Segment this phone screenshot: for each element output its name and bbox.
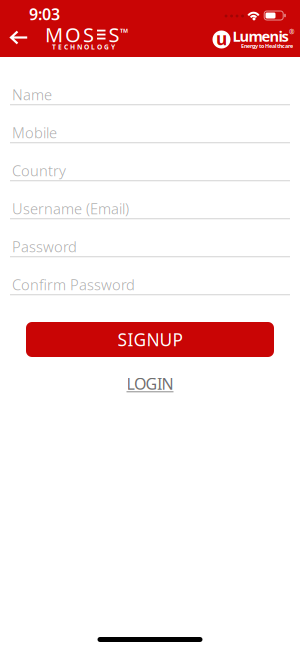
- button[interactable]: Country: [10, 161, 290, 181]
- staticText: Confirm Password: [12, 275, 135, 294]
- staticText: Username (Email): [12, 199, 129, 218]
- staticText: Name: [12, 85, 52, 104]
- button[interactable]: Username (Email): [10, 199, 290, 219]
- staticText: Mobile: [12, 123, 57, 142]
- staticText: T E C H N O L O G Y: [52, 43, 115, 51]
- staticText: O: [65, 21, 81, 48]
- staticText: ®: [289, 27, 295, 36]
- staticText: Country: [12, 161, 66, 180]
- button[interactable]: Password: [10, 237, 290, 257]
- button[interactable]: Name: [10, 85, 290, 105]
- staticText: TM: [120, 27, 128, 34]
- staticText: SIGNUP: [117, 328, 182, 351]
- button[interactable]: Back: [0, 33, 28, 46]
- staticText: M: [45, 21, 63, 48]
- button[interactable]: Mobile: [10, 123, 290, 143]
- staticText: 9:03: [29, 3, 60, 25]
- staticText: Lumenis: [232, 26, 288, 46]
- staticText: Energy to Healthcare: [241, 42, 293, 50]
- button[interactable]: LOGIN: [126, 373, 173, 394]
- staticText: S: [83, 21, 94, 48]
- staticText: u: [216, 27, 227, 50]
- staticText: Password: [12, 237, 77, 256]
- staticText: LOGIN: [126, 373, 173, 394]
- button[interactable]: SIGNUP: [26, 322, 274, 357]
- button[interactable]: Confirm Password: [10, 275, 290, 295]
- staticText: S: [108, 21, 119, 48]
